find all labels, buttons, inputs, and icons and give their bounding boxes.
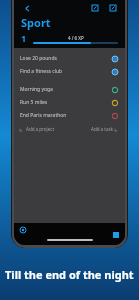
staticText: Run 5 miles (20, 99, 110, 106)
staticText: Sport (21, 15, 51, 30)
button[interactable]: Recent apps (112, 231, 120, 239)
staticText: Add a task (91, 126, 113, 132)
button[interactable]: Lose 20 pounds status (110, 54, 119, 63)
staticText: Lose 20 pounds (20, 55, 110, 62)
button[interactable]: End Paris marathon (14, 109, 125, 122)
staticText: Till the end of the night (5, 267, 134, 282)
staticText: Find a fitness club (20, 68, 110, 75)
staticText: Morning yoga (20, 86, 110, 93)
button[interactable]: Share (90, 3, 100, 13)
button[interactable]: Add a project (20, 126, 55, 132)
button[interactable]: End Paris marathon status (110, 111, 119, 120)
button[interactable]: Lose 20 pounds (14, 52, 125, 65)
button[interactable]: Run 5 miles (14, 96, 125, 109)
button[interactable]: Menu (19, 226, 27, 234)
staticText: 4 / 6 XP (68, 35, 84, 41)
staticText: 1 (21, 32, 27, 44)
staticText: Add a project (26, 126, 55, 132)
button[interactable]: Morning yoga (14, 83, 125, 96)
button[interactable]: Find a fitness club status (110, 67, 119, 76)
button[interactable]: More options (108, 3, 118, 13)
button[interactable]: Morning yoga status (110, 85, 119, 94)
button[interactable]: Add a task (91, 126, 119, 132)
staticText: End Paris marathon (20, 112, 110, 119)
button[interactable]: Find a fitness club (14, 65, 125, 78)
button[interactable]: Run 5 miles status (110, 98, 119, 107)
button[interactable]: Back (21, 2, 33, 14)
